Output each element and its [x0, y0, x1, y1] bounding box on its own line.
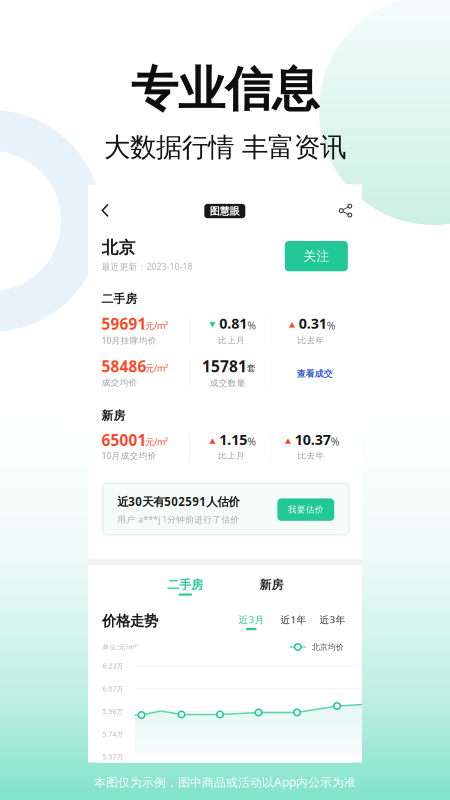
staticText: 本图仅为示例，图中商品或活动以App内公示为准: [94, 774, 356, 790]
staticText: 近1年: [280, 613, 306, 626]
staticText: %: [331, 434, 340, 449]
staticText: 成交数量: [210, 378, 246, 388]
staticText: 近3年: [319, 613, 345, 626]
button[interactable]: 返回: [88, 194, 118, 226]
staticText: 新房: [259, 577, 283, 592]
button[interactable]: 近3月: [238, 611, 264, 633]
staticText: 比上月: [218, 450, 245, 461]
button[interactable]: 关注: [285, 241, 348, 271]
staticText: 套: [247, 363, 256, 374]
staticText: 比上月: [218, 335, 245, 346]
staticText: 查看成交: [297, 368, 333, 379]
button[interactable]: 近1年: [280, 611, 306, 633]
staticText: %: [327, 318, 336, 332]
staticText: 价格走势: [102, 612, 158, 630]
button[interactable]: 近3年: [319, 611, 345, 633]
button[interactable]: 查看成交: [275, 357, 354, 391]
staticText: 10月成交均价: [102, 450, 157, 461]
staticText: 10.37: [295, 430, 331, 449]
staticText: 6.23万: [103, 661, 124, 671]
staticText: 最近更新：2023-10-18: [102, 260, 193, 272]
staticText: 0.81: [219, 313, 247, 333]
staticText: 15781: [202, 356, 247, 377]
staticText: %: [247, 318, 256, 332]
staticText: 北京: [102, 237, 136, 258]
staticText: 大数据行情 丰富资讯: [104, 131, 346, 164]
staticText: 单位:元/m²: [103, 642, 137, 652]
staticText: 元/m²: [145, 436, 168, 448]
staticText: 10月挂牌均价: [102, 334, 157, 346]
staticText: 关注: [303, 248, 329, 264]
staticText: 65001: [102, 430, 147, 450]
staticText: 1.15: [219, 430, 247, 449]
staticText: 比去年: [297, 450, 324, 461]
staticText: 北京均价: [312, 642, 344, 652]
staticText: 二手房: [167, 577, 203, 592]
staticText: 用户 a***j 1分钟前进行了估价: [117, 513, 239, 525]
staticText: 59691: [102, 313, 147, 334]
button[interactable]: 二手房: [156, 574, 214, 604]
staticText: 新房: [102, 408, 126, 423]
button[interactable]: 我要估价: [277, 498, 334, 521]
staticText: 5.57万: [103, 752, 124, 762]
button[interactable]: 新房: [247, 574, 295, 604]
staticText: %: [247, 434, 256, 449]
staticText: 元/m²: [145, 319, 168, 332]
staticText: 二手房: [102, 292, 138, 306]
staticText: 比去年: [297, 335, 324, 346]
staticText: 成交均价: [102, 377, 138, 388]
staticText: 专业信息: [131, 60, 319, 119]
staticText: 0.31: [299, 313, 327, 333]
staticText: 58486: [102, 356, 147, 377]
button[interactable]: 分享: [330, 194, 360, 226]
staticText: 6.07万: [103, 684, 124, 693]
staticText: 5.90万: [103, 707, 124, 716]
staticText: 5.74万: [103, 730, 124, 739]
staticText: 元/m²: [145, 362, 168, 374]
staticText: 我要估价: [288, 504, 324, 515]
staticText: 近3月: [238, 613, 264, 626]
staticText: 图慧眼: [210, 205, 240, 217]
staticText: 近30天有502591人估价: [117, 494, 239, 509]
